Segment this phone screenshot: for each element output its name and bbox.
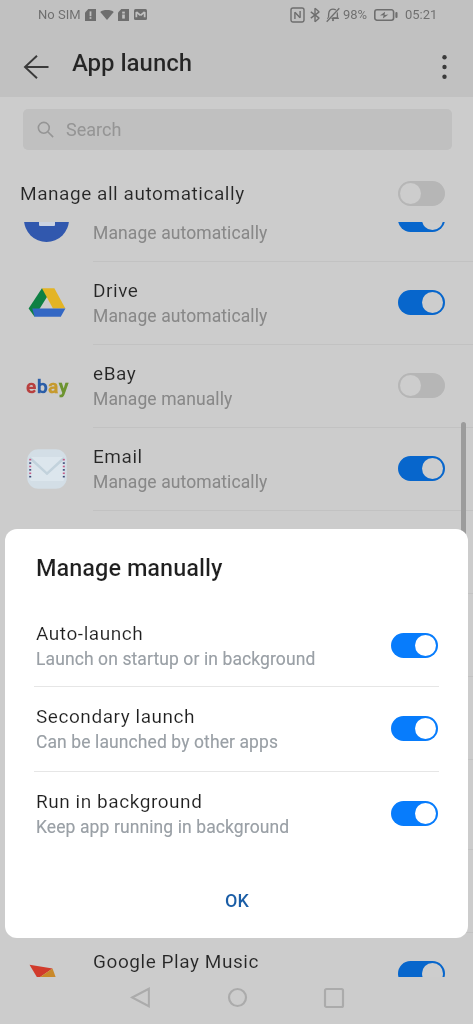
- staticText: 98%: [343, 7, 368, 22]
- staticText: Google Photos: [93, 777, 225, 799]
- button[interactable]: Google Photos: [0, 759, 473, 842]
- button[interactable]: Manage all automatically: [0, 167, 473, 219]
- staticText: y: [59, 375, 69, 397]
- staticText: Can be launched by other apps: [36, 732, 279, 753]
- staticText: Manage automatically: [93, 721, 268, 742]
- button[interactable]: Auto-launch: [5, 603, 468, 688]
- staticText: Email: [93, 445, 143, 467]
- staticText: No SIM: [38, 7, 81, 22]
- staticText: e: [26, 375, 37, 397]
- staticText: Manage automatically: [93, 472, 268, 493]
- staticText: Facebook Lite: [93, 528, 219, 550]
- button[interactable]: [398, 373, 445, 398]
- button[interactable]: [398, 622, 445, 647]
- button[interactable]: Run in background: [5, 771, 468, 856]
- button[interactable]: Email: [0, 427, 473, 510]
- button[interactable]: [398, 705, 445, 730]
- button[interactable]: Drive: [0, 261, 473, 344]
- staticText: b: [37, 375, 48, 397]
- button[interactable]: Google Play Music: [0, 932, 473, 977]
- staticText: eBay: [93, 362, 137, 384]
- staticText: Run in background: [36, 790, 203, 812]
- button[interactable]: [398, 456, 445, 481]
- button[interactable]: Facebook: [0, 222, 473, 261]
- staticText: Gmail: [93, 611, 145, 633]
- staticText: a: [48, 375, 59, 397]
- button[interactable]: Google: [0, 676, 473, 759]
- staticText: Manage manually: [93, 389, 233, 410]
- staticText: Manage manually: [36, 554, 223, 582]
- staticText: Manage automatically: [93, 555, 268, 576]
- staticText: Keep app running in background: [36, 817, 290, 838]
- button[interactable]: [391, 801, 438, 826]
- staticText: Manage automatically: [93, 804, 268, 825]
- button[interactable]: Facebook Lite: [0, 510, 473, 593]
- button[interactable]: Secondary launch: [5, 686, 468, 771]
- staticText: Drive: [93, 279, 139, 301]
- staticText: App launch: [72, 49, 193, 77]
- staticText: Auto-launch: [36, 622, 144, 644]
- staticText: 05:21: [405, 7, 438, 22]
- button[interactable]: Search: [23, 109, 452, 150]
- button[interactable]: OK: [5, 875, 468, 925]
- button[interactable]: [391, 716, 438, 741]
- button[interactable]: [398, 788, 445, 813]
- button[interactable]: Back: [13, 44, 59, 90]
- button[interactable]: Recents: [306, 974, 362, 1021]
- button[interactable]: Gmail: [0, 593, 473, 676]
- button[interactable]: e: [0, 344, 473, 427]
- staticText: Manage all automatically: [20, 182, 245, 204]
- button[interactable]: Back: [112, 974, 168, 1021]
- button[interactable]: [398, 290, 445, 315]
- button[interactable]: [398, 222, 445, 232]
- button[interactable]: Google Play Movies: [0, 842, 473, 925]
- staticText: Launch on startup or in background: [36, 649, 316, 670]
- staticText: Manage automatically: [93, 887, 268, 908]
- staticText: OK: [225, 890, 249, 911]
- staticText: Google: [93, 694, 157, 716]
- staticText: Secondary launch: [36, 705, 196, 727]
- staticText: Search: [66, 119, 122, 140]
- staticText: Manage automatically: [93, 638, 268, 659]
- button[interactable]: [398, 181, 445, 206]
- staticText: Manage automatically: [93, 223, 268, 244]
- staticText: Google Play Music: [93, 950, 259, 972]
- button[interactable]: [391, 633, 438, 658]
- button[interactable]: More options: [421, 44, 467, 90]
- staticText: Manage automatically: [93, 306, 268, 327]
- button[interactable]: [398, 961, 445, 977]
- button[interactable]: Home: [209, 974, 265, 1021]
